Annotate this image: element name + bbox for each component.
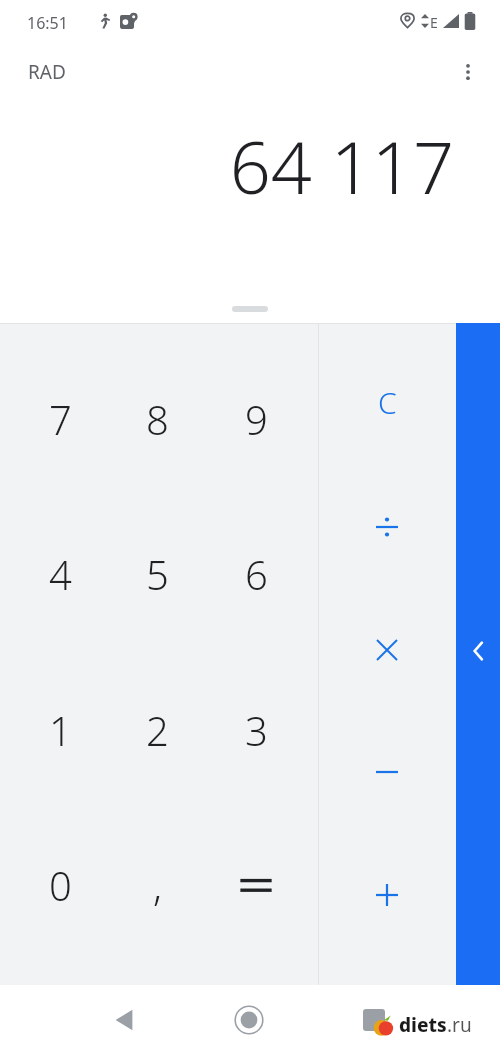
button[interactable]: Home	[225, 996, 273, 1044]
staticText: .ru	[447, 1012, 472, 1038]
button[interactable]: 8	[110, 371, 204, 467]
staticText: 3	[245, 703, 268, 757]
button[interactable]: 2	[110, 682, 204, 778]
staticText: ,	[153, 858, 162, 912]
button[interactable]: 3	[209, 682, 303, 778]
staticText: diets	[399, 1012, 447, 1038]
button[interactable]: 64 117	[0, 100, 500, 300]
button[interactable]: Divide	[347, 487, 427, 567]
button[interactable]: 7	[13, 371, 107, 467]
button[interactable]: Multiply	[347, 610, 427, 690]
button[interactable]: 1	[13, 682, 107, 778]
button[interactable]: Expand advanced pad	[456, 323, 500, 985]
staticText: 6	[245, 547, 268, 601]
staticText: E	[430, 13, 438, 32]
button[interactable]: 5	[110, 526, 204, 622]
button[interactable]: RAD	[16, 51, 78, 93]
button[interactable]: 9	[209, 371, 303, 467]
staticText: 8	[146, 392, 169, 446]
staticText: RAD	[28, 59, 66, 85]
button[interactable]: Recent apps	[350, 996, 398, 1044]
button[interactable]: 4	[13, 526, 107, 622]
staticText: 7	[49, 392, 72, 446]
button[interactable]: ,	[110, 837, 204, 933]
staticText: 64 117	[229, 117, 454, 215]
button[interactable]: Subtract	[347, 732, 427, 812]
button[interactable]: Clear	[347, 362, 427, 442]
staticText: 1	[49, 703, 72, 757]
button[interactable]: More options	[444, 48, 492, 96]
staticText: 16:51	[27, 12, 68, 34]
button[interactable]	[209, 837, 303, 933]
staticText: 0	[49, 858, 72, 912]
button[interactable]: Add	[347, 855, 427, 935]
staticText: 4	[49, 547, 72, 601]
button[interactable]: Back	[100, 996, 148, 1044]
staticText: 9	[245, 392, 268, 446]
button[interactable]: 6	[209, 526, 303, 622]
button[interactable]: 0	[13, 837, 107, 933]
staticText: C	[378, 382, 397, 423]
staticText: 5	[146, 547, 169, 601]
staticText: 2	[146, 703, 169, 757]
